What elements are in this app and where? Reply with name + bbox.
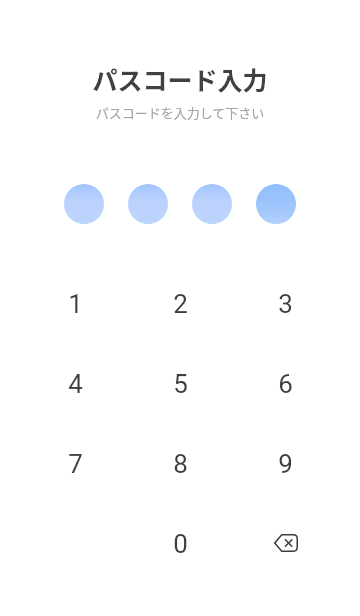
staticText: パスコードを入力して下さい [0, 103, 360, 122]
staticText: 6 [278, 369, 293, 399]
button[interactable]: 1 [23, 264, 128, 344]
button[interactable]: Backspace [233, 504, 338, 584]
staticText: 0 [173, 529, 188, 559]
button[interactable]: 5 [128, 344, 233, 424]
button[interactable]: 8 [128, 424, 233, 504]
staticText: 2 [173, 289, 188, 319]
staticText: 9 [278, 449, 293, 479]
staticText: 3 [278, 289, 293, 319]
staticText: 4 [68, 369, 83, 399]
staticText: 7 [68, 449, 83, 479]
button[interactable]: 0 [128, 504, 233, 584]
staticText: 1 [68, 289, 83, 319]
button[interactable]: 6 [233, 344, 338, 424]
button[interactable]: 4 [23, 344, 128, 424]
staticText: パスコード入力 [0, 61, 360, 97]
button[interactable]: 7 [23, 424, 128, 504]
button[interactable]: 9 [233, 424, 338, 504]
button[interactable]: 2 [128, 264, 233, 344]
staticText: 8 [173, 449, 188, 479]
button[interactable]: 3 [233, 264, 338, 344]
staticText: 5 [173, 369, 188, 399]
